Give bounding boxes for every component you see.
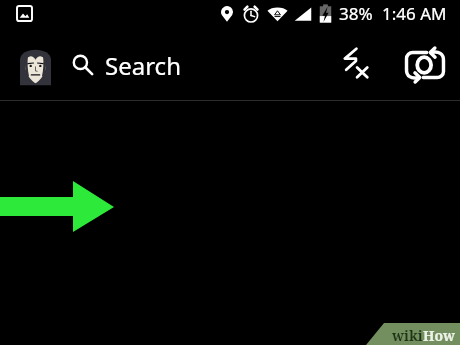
staticText: wiki bbox=[392, 326, 423, 345]
staticText: How bbox=[423, 326, 456, 345]
button[interactable]: Search bbox=[72, 49, 208, 79]
staticText: 38% bbox=[339, 2, 373, 25]
button[interactable]: Flash off bbox=[336, 46, 370, 80]
staticText: Search bbox=[105, 49, 181, 79]
button[interactable]: Flip camera bbox=[404, 48, 446, 82]
staticText: 1:46 AM bbox=[382, 2, 447, 25]
button[interactable]: Profile bbox=[20, 47, 51, 86]
